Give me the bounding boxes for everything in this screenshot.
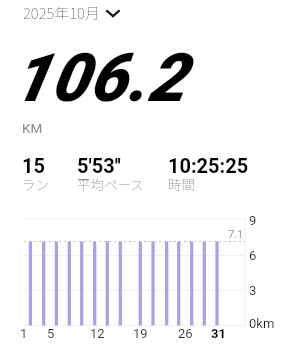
staticText: 15 [22, 154, 45, 177]
button[interactable]: 10:25:25 [168, 154, 249, 197]
staticText: 106.2 [12, 39, 187, 118]
staticText: 7.1 [228, 228, 244, 241]
staticText: 1 [20, 326, 28, 341]
staticText: 5 [47, 326, 55, 341]
button[interactable]: 15 [22, 154, 49, 197]
staticText: 平均ペース [77, 174, 144, 194]
staticText: 26 [178, 326, 193, 341]
staticText: 12 [90, 326, 105, 341]
staticText: 9 [249, 213, 257, 228]
staticText: 3 [249, 283, 257, 298]
staticText: 2025年10月 [23, 2, 100, 24]
staticText: 時間 [168, 174, 195, 194]
button[interactable]: 5'53'' [77, 154, 144, 197]
staticText: 31 [211, 326, 226, 341]
button[interactable]: 2025年10月 [19, 0, 124, 27]
staticText: 5'53'' [77, 154, 121, 177]
staticText: KM [22, 120, 43, 136]
staticText: 10:25:25 [168, 154, 249, 177]
staticText: 6 [249, 248, 257, 263]
staticText: ラン [22, 174, 49, 194]
staticText: 0km [249, 316, 275, 331]
staticText: 19 [133, 326, 148, 341]
